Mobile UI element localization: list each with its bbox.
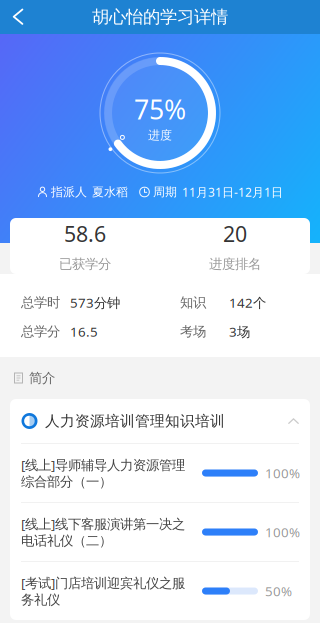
staticText: 胡心怡的学习详情 — [92, 6, 228, 28]
staticText: 总学分 — [21, 323, 60, 340]
staticText: 3场 — [229, 323, 250, 340]
button[interactable]: [线上]线下客服演讲第一决之电话礼仪（二） — [10, 503, 310, 561]
staticText: [线上]导师辅导人力资源管理综合部分（一） — [21, 456, 185, 490]
staticText: 考场 — [180, 323, 206, 340]
staticText: 知识 — [180, 294, 206, 311]
staticText: 573分钟 — [70, 294, 120, 311]
staticText: 58.6 — [64, 220, 106, 248]
staticText: 100% — [265, 523, 300, 541]
staticText: 周期 — [153, 185, 177, 199]
button[interactable]: [考试]门店培训迎宾礼仪之服务礼仪 — [10, 562, 310, 620]
staticText: 50% — [265, 582, 292, 600]
button[interactable]: [线上]导师辅导人力资源管理综合部分（一） — [10, 444, 310, 502]
staticText: 指派人 — [51, 185, 87, 199]
staticText: 142个 — [229, 294, 266, 311]
button[interactable]: Back — [0, 0, 36, 34]
staticText: 进度 — [148, 128, 172, 142]
staticText: 总学时 — [21, 294, 60, 311]
staticText: 夏水稻 — [92, 185, 128, 199]
staticText: 100% — [265, 464, 300, 482]
staticText: 16.5 — [70, 323, 98, 340]
button[interactable]: 人力资源培训管理知识培训 — [10, 399, 310, 443]
staticText: 75% — [134, 91, 186, 127]
staticText: 进度排名 — [209, 256, 261, 272]
staticText: 人力资源培训管理知识培训 — [45, 412, 225, 430]
staticText: 已获学分 — [59, 256, 111, 272]
staticText: 简介 — [29, 370, 55, 386]
staticText: 20 — [223, 220, 247, 248]
staticText: [线上]线下客服演讲第一决之电话礼仪（二） — [21, 515, 185, 549]
staticText: [考试]门店培训迎宾礼仪之服务礼仪 — [21, 574, 185, 608]
staticText: 11月31日-12月1日 — [182, 184, 283, 200]
